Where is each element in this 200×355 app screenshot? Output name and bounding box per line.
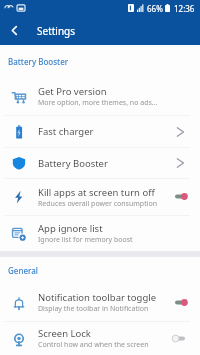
staticText: Screen Lock [38,327,91,340]
staticText: Settings [37,24,76,38]
staticText: Ignore list for memory boost [38,235,133,245]
button[interactable]: App ignore list [0,216,200,251]
button[interactable]: Back [0,16,29,45]
button[interactable]: Get Pro version [0,78,200,115]
staticText: Kill apps at screen turn off [38,186,155,199]
staticText: Battery Booster [8,56,69,67]
button[interactable]: Toggle off [175,333,189,345]
button[interactable]: Toggle on [175,297,189,309]
button[interactable]: Screen Lock [0,322,200,355]
button[interactable]: Battery Booster [0,148,200,178]
button[interactable]: Notification toolbar toggle [0,284,200,321]
button[interactable]: Toggle on [175,191,189,203]
staticText: Fast charger [38,125,94,138]
staticText: Control how and when the screen [38,340,149,350]
staticText: Notification toolbar toggle [38,291,157,304]
staticText: Get Pro version [38,85,107,98]
staticText: 66% [147,3,163,14]
staticText: Battery Booster [38,157,108,170]
staticText: Display the toolbar in Notification [38,304,149,314]
staticText: 12:36 [174,3,195,14]
staticText: More option, more themes, no ads... [38,98,158,108]
button[interactable]: Kill apps at screen turn off [0,179,200,215]
staticText: General [8,265,38,276]
staticText: App ignore list [38,222,103,235]
staticText: Reduces overall power consumption [38,199,158,209]
button[interactable]: Fast charger [0,116,200,147]
